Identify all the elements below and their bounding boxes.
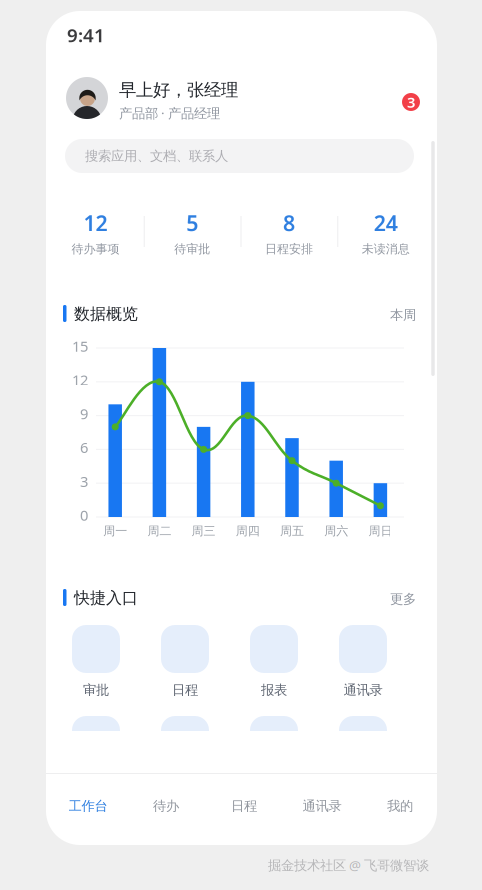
staticText: 早上好，张经理: [119, 79, 238, 101]
staticText: 通讯录: [343, 682, 382, 698]
staticText: 数据概览: [74, 304, 138, 324]
staticText: 0: [80, 505, 88, 525]
button[interactable]: 搜索应用、文档、联系人: [65, 139, 414, 173]
staticText: 3: [407, 92, 415, 112]
staticText: 日程安排: [265, 242, 313, 256]
button[interactable]: 日程: [161, 625, 209, 701]
staticText: 日程: [172, 682, 198, 698]
staticText: 待办: [153, 798, 179, 814]
staticText: 未读消息: [362, 242, 410, 256]
button[interactable]: 日程: [205, 781, 283, 831]
staticText: 审批: [83, 682, 109, 698]
staticText: 快捷入口: [74, 588, 138, 608]
staticText: 5: [186, 209, 198, 237]
staticText: 本周: [390, 307, 416, 323]
button[interactable]: 本周: [356, 305, 416, 325]
button[interactable]: 8: [240, 203, 337, 261]
staticText: 周五: [280, 524, 304, 538]
button[interactable]: 12: [47, 203, 144, 261]
staticText: 工作台: [68, 798, 107, 814]
button[interactable]: 审批: [72, 625, 120, 701]
staticText: 周三: [192, 524, 216, 538]
staticText: 周日: [368, 524, 392, 538]
staticText: 产品部 · 产品经理: [119, 104, 220, 122]
staticText: 待审批: [174, 242, 210, 256]
staticText: 9:41: [67, 23, 105, 47]
staticText: 周六: [324, 524, 348, 538]
button[interactable]: 报表: [250, 625, 298, 701]
staticText: 12: [72, 370, 88, 390]
staticText: 周一: [103, 524, 127, 538]
button[interactable]: 通讯录: [283, 781, 361, 831]
button[interactable]: 24: [337, 203, 434, 261]
staticText: 15: [72, 336, 88, 356]
button[interactable]: 未读通知 3 条: [402, 93, 420, 111]
staticText: 24: [374, 209, 398, 237]
button[interactable]: 待办: [127, 781, 205, 831]
staticText: 通讯录: [302, 798, 341, 814]
staticText: 3: [80, 471, 88, 491]
staticText: 日程: [231, 798, 257, 814]
staticText: 报表: [261, 682, 287, 698]
staticText: 搜索应用、文档、联系人: [85, 148, 228, 164]
staticText: 待办事项: [71, 242, 119, 256]
staticText: 更多: [390, 591, 416, 607]
staticText: 12: [83, 209, 107, 237]
button[interactable]: 5: [144, 203, 241, 261]
button[interactable]: 更多: [356, 589, 416, 609]
button[interactable]: 工作台: [49, 781, 127, 831]
button[interactable]: 通讯录: [339, 625, 387, 701]
button[interactable]: 我的: [361, 781, 439, 831]
staticText: 8: [283, 209, 295, 237]
staticText: 我的: [387, 798, 413, 814]
staticText: 掘金技术社区 @ 飞哥微智谈: [268, 856, 429, 874]
staticText: 周四: [236, 524, 260, 538]
staticText: 6: [80, 438, 88, 457]
staticText: 周二: [147, 524, 171, 538]
staticText: 9: [80, 404, 88, 423]
